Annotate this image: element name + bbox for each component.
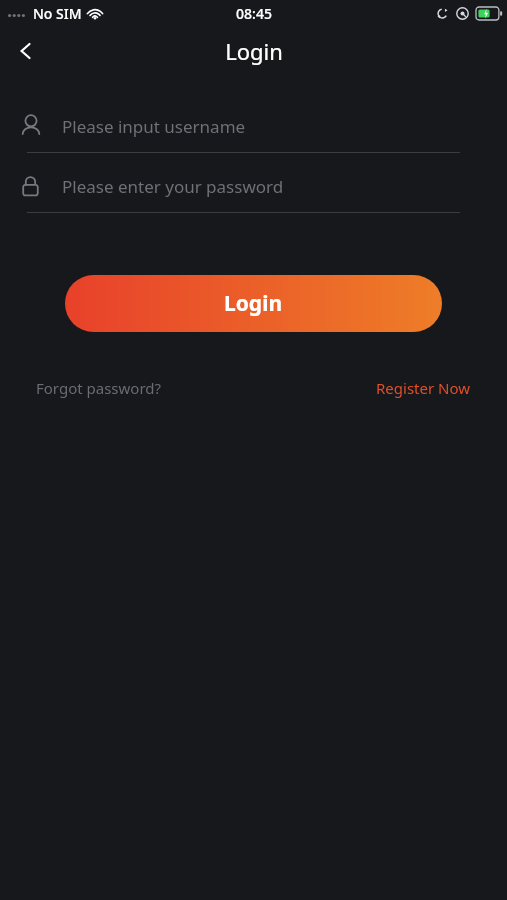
button[interactable]: Register Now [376, 374, 471, 402]
staticText: Forgot password? [36, 378, 162, 398]
button[interactable]: Back [0, 26, 52, 76]
staticText: Login [224, 289, 283, 318]
staticText: Login [225, 36, 283, 66]
button[interactable]: Forgot password? [36, 374, 162, 402]
staticText: No SIM [33, 4, 82, 23]
staticText: 08:45 [236, 4, 272, 23]
button[interactable]: Please input username [18, 104, 460, 148]
staticText: Please enter your password [62, 175, 284, 198]
button[interactable]: Please enter your password [18, 164, 460, 208]
button[interactable]: Login [65, 275, 442, 332]
staticText: Register Now [376, 378, 471, 398]
staticText: Please input username [62, 115, 246, 138]
